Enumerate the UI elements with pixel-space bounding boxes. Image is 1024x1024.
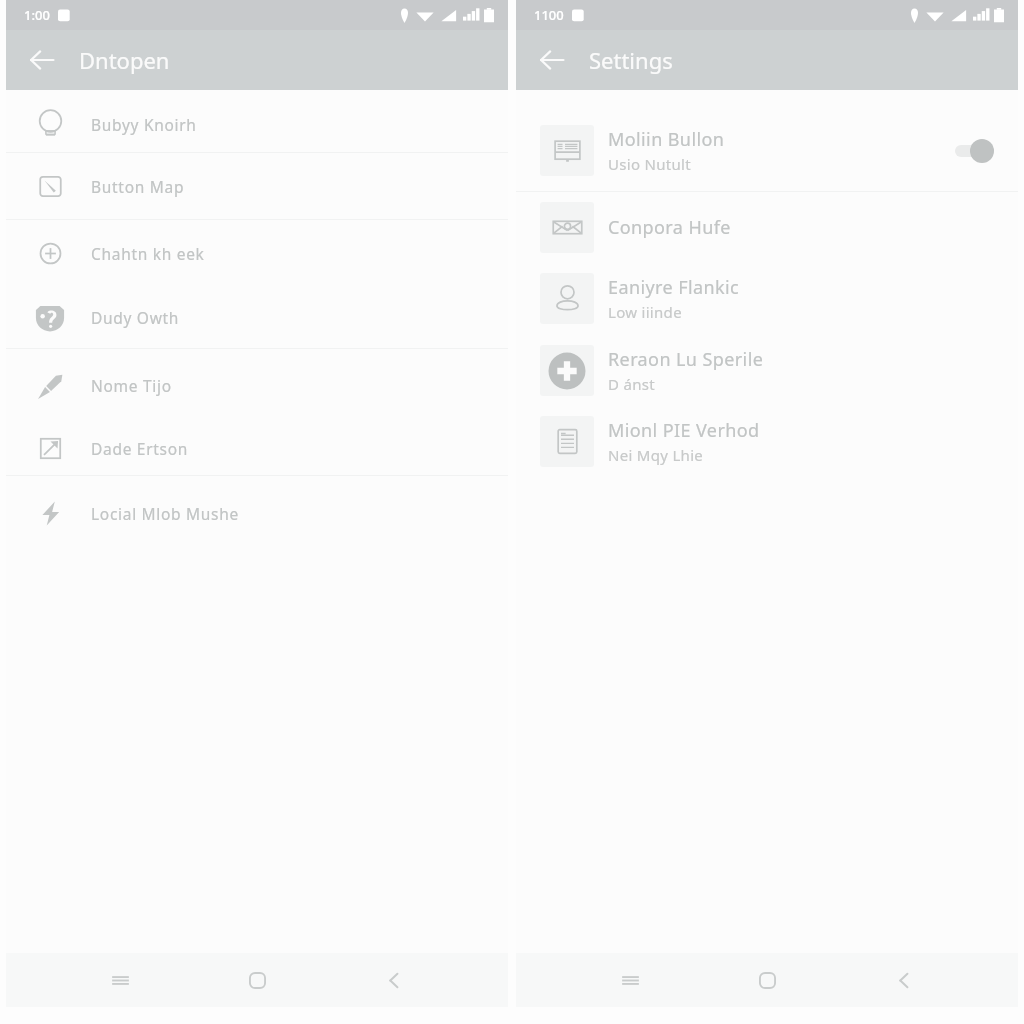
button[interactable]: Reraon Lu Sperile xyxy=(516,335,1018,405)
button[interactable]: Button Map xyxy=(6,153,508,219)
staticText: Eaniyre Flankic xyxy=(608,275,740,300)
button[interactable]: Home xyxy=(744,957,790,1003)
button[interactable]: Back xyxy=(371,957,417,1003)
staticText: Conpora Hufe xyxy=(608,215,731,240)
staticText: Chahtn kh eek xyxy=(91,243,205,264)
button[interactable]: Eaniyre Flankic xyxy=(516,262,1018,335)
staticText: 1100 xyxy=(534,6,564,24)
button[interactable]: Conpora Hufe xyxy=(516,192,1018,262)
staticText: Dade Ertson xyxy=(91,438,189,459)
button[interactable]: Toggle xyxy=(955,138,994,164)
staticText: Bubyy Knoirh xyxy=(91,114,197,135)
button[interactable]: Nome Tijo xyxy=(6,349,508,421)
staticText: Settings xyxy=(589,45,673,75)
button[interactable]: Recents xyxy=(607,957,653,1003)
staticText: Reraon Lu Sperile xyxy=(608,347,764,372)
button[interactable]: Home xyxy=(234,957,280,1003)
staticText: Nei Mqy Lhie xyxy=(608,445,704,465)
button[interactable]: Moliin Bullon xyxy=(516,110,1018,191)
button[interactable]: Bubyy Knoirh xyxy=(6,96,508,152)
button[interactable]: Back xyxy=(881,957,927,1003)
staticText: Dntopen xyxy=(79,45,170,75)
button[interactable]: Back xyxy=(19,37,65,83)
staticText: 1:00 xyxy=(24,6,50,24)
staticText: D ánst xyxy=(608,374,655,394)
button[interactable]: Dudy Owth xyxy=(6,286,508,348)
button[interactable]: Back xyxy=(529,37,575,83)
staticText: Button Map xyxy=(91,176,185,197)
button[interactable]: Mionl PIE Verhod xyxy=(516,405,1018,477)
staticText: Dudy Owth xyxy=(91,307,180,328)
staticText: Locial Mlob Mushe xyxy=(91,503,239,524)
button[interactable]: Locial Mlob Mushe xyxy=(6,476,508,550)
staticText: Mionl PIE Verhod xyxy=(608,418,760,443)
button[interactable]: Recents xyxy=(97,957,143,1003)
staticText: Low iiinde xyxy=(608,302,682,322)
staticText: Nome Tijo xyxy=(91,375,172,396)
staticText: Usio Nutult xyxy=(608,154,691,174)
staticText: Moliin Bullon xyxy=(608,127,725,152)
button[interactable]: Dade Ertson xyxy=(6,421,508,475)
button[interactable]: Chahtn kh eek xyxy=(6,220,508,286)
